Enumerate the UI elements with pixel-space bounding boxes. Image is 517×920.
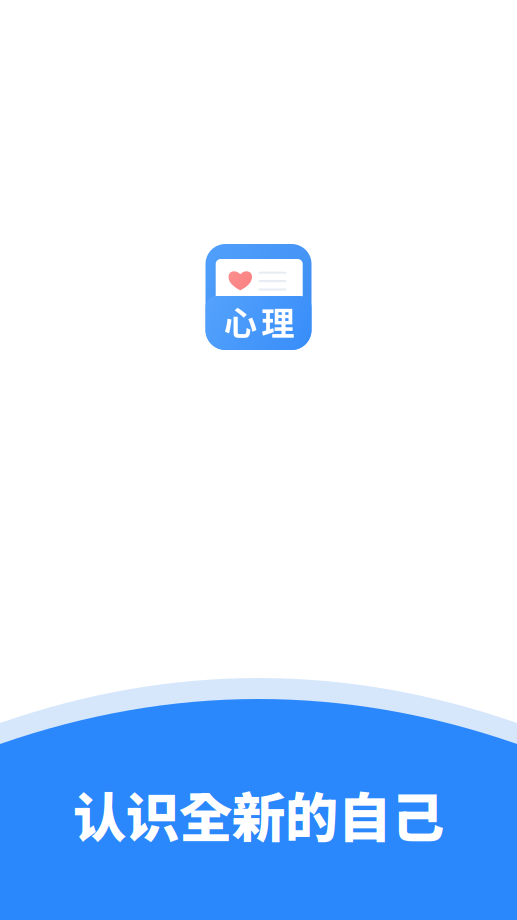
staticText: 心理 (224, 303, 294, 343)
staticText: 认识全新的自己 (73, 785, 444, 848)
